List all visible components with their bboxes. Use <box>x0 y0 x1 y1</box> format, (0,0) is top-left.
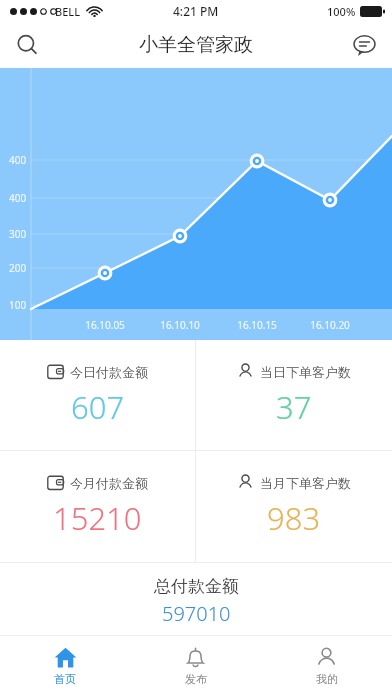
staticText: 300 <box>9 227 27 241</box>
staticText: 总付款金额 <box>154 576 239 597</box>
staticText: 607 <box>71 386 125 428</box>
button[interactable]: Messages <box>343 24 385 66</box>
button[interactable]: 今月付款金额 <box>0 451 195 562</box>
staticText: 首页 <box>54 672 76 686</box>
staticText: 400 <box>9 153 27 167</box>
staticText: 16.10.20 <box>310 318 350 332</box>
staticText: 100% <box>327 4 356 19</box>
staticText: 37 <box>276 386 312 428</box>
staticText: 今月付款金额 <box>70 475 148 491</box>
staticText: 小羊全管家政 <box>139 33 253 57</box>
staticText: 400 <box>9 191 27 205</box>
staticText: BELL <box>55 4 81 19</box>
staticText: 100 <box>9 298 27 312</box>
staticText: 983 <box>267 497 321 539</box>
button[interactable]: 我的 <box>261 636 392 696</box>
button[interactable]: 当月下单客户数 <box>196 451 392 562</box>
staticText: 当日下单客户数 <box>260 364 351 380</box>
button[interactable]: 总付款金额 <box>0 563 392 635</box>
staticText: 16.10.15 <box>237 318 277 332</box>
button[interactable]: 当日下单客户数 <box>196 340 392 450</box>
staticText: 发布 <box>185 672 207 686</box>
staticText: 15210 <box>53 497 142 539</box>
staticText: 今日付款金额 <box>70 364 148 380</box>
staticText: 200 <box>9 261 27 275</box>
staticText: 我的 <box>316 672 338 686</box>
button[interactable]: Search <box>6 24 48 66</box>
staticText: 4:21 PM <box>173 3 219 19</box>
staticText: 16.10.10 <box>160 318 200 332</box>
staticText: 当月下单客户数 <box>260 475 351 491</box>
button[interactable]: 今日付款金额 <box>0 340 195 450</box>
button[interactable]: 首页 <box>0 636 130 696</box>
button[interactable]: 发布 <box>130 636 261 696</box>
staticText: 597010 <box>162 600 231 627</box>
staticText: 16.10.05 <box>85 318 125 332</box>
